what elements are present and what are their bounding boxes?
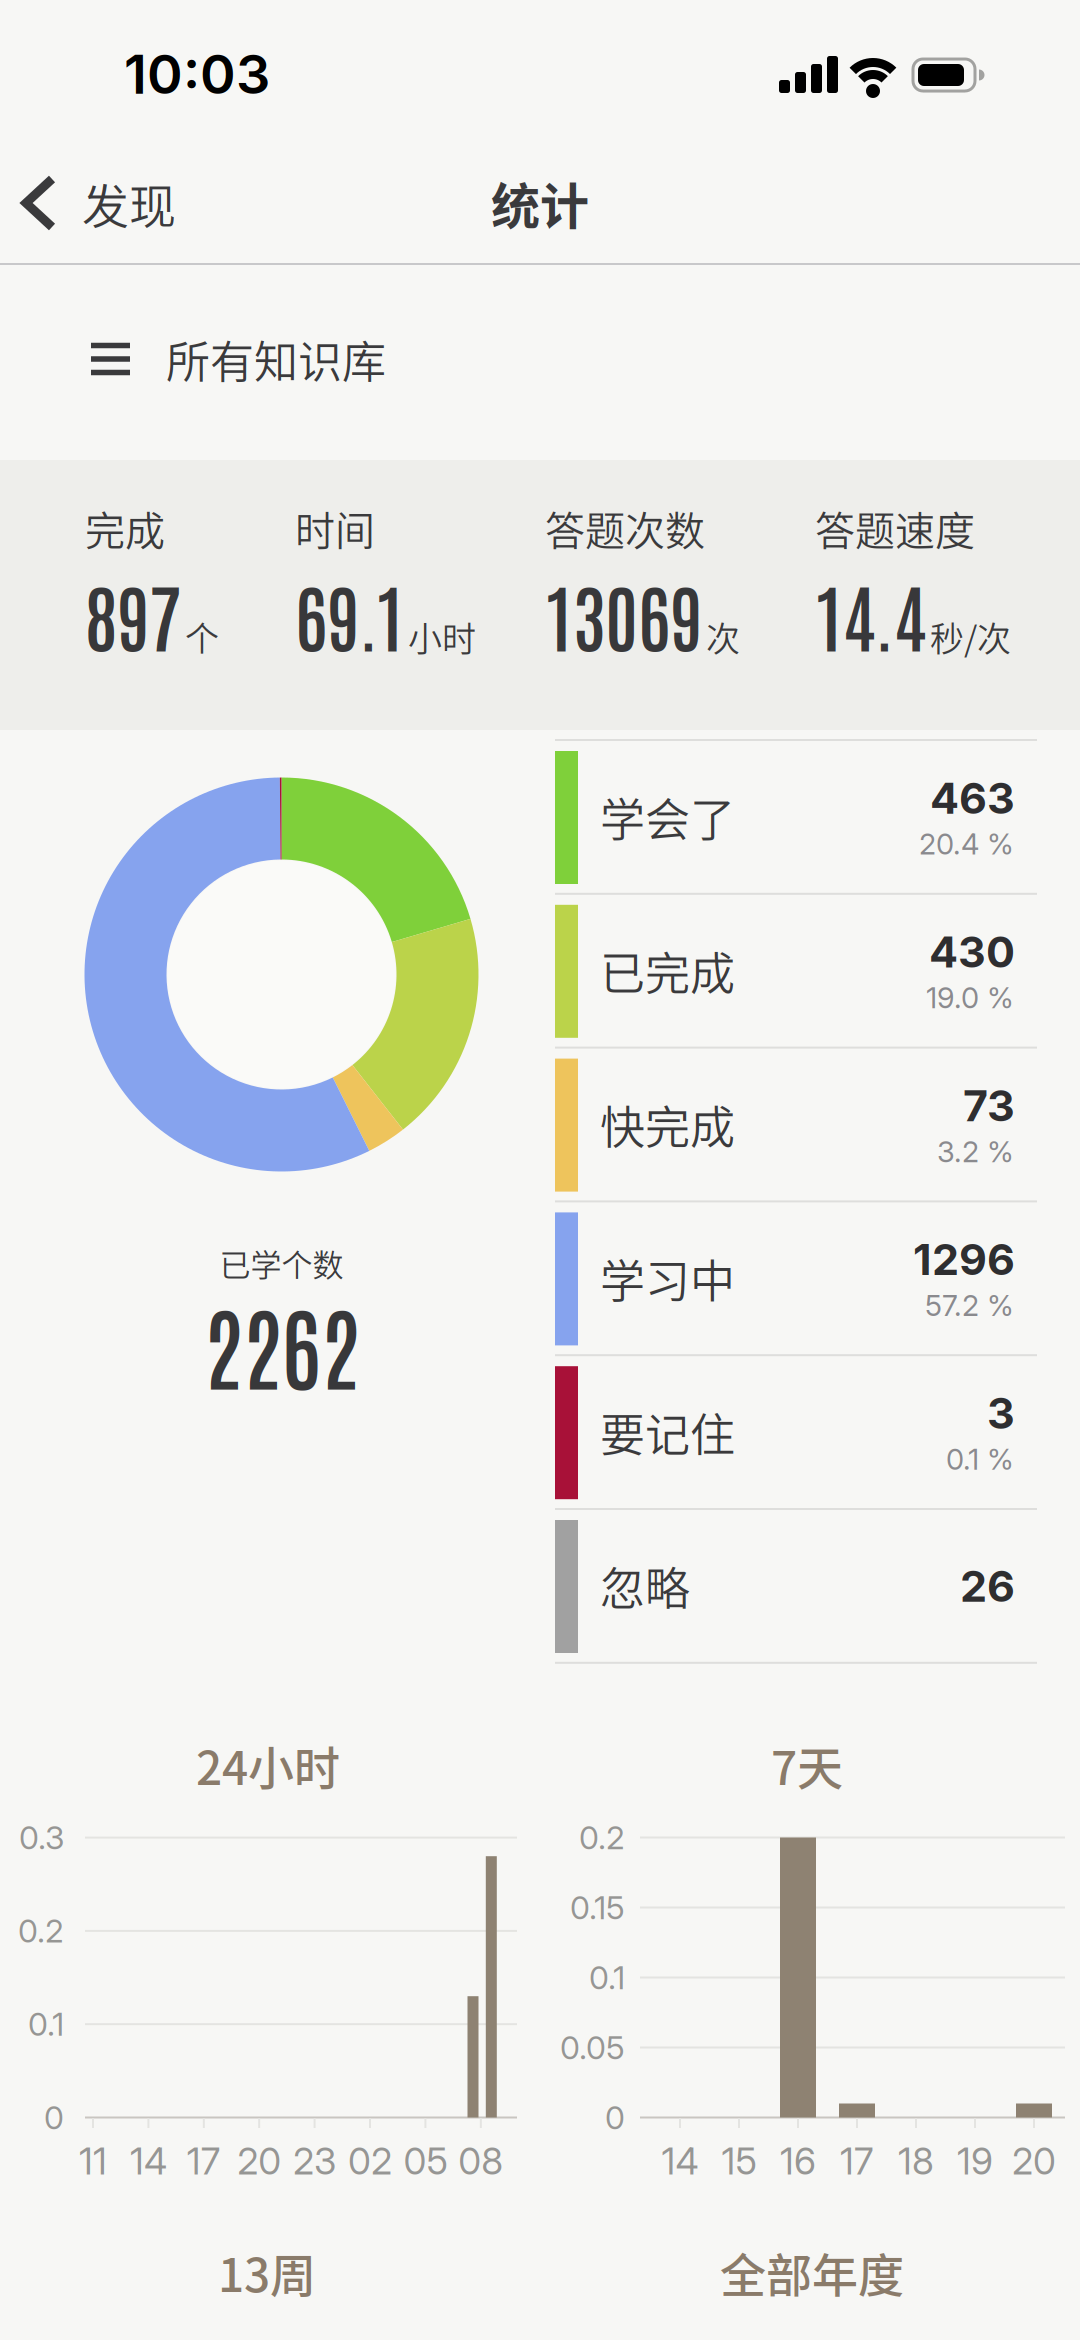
staticText: 08 [458, 2139, 503, 2183]
staticText: 14.4 [815, 566, 926, 662]
staticText: 17 [840, 2139, 874, 2183]
staticText: 15 [721, 2139, 756, 2183]
staticText: 统计 [491, 167, 589, 238]
staticText: 0.1 [28, 2005, 64, 2043]
staticText: 57.2 % [925, 1288, 1014, 1323]
staticText: 忽略 [600, 1553, 690, 1619]
staticText: 05 [403, 2139, 447, 2183]
staticText: 20.4 % [919, 826, 1014, 862]
button[interactable]: 全部年度 [662, 2232, 962, 2312]
staticText: 所有知识库 [166, 327, 386, 391]
staticText: 0 [44, 2098, 64, 2137]
staticText: 7天 [771, 1732, 843, 1798]
staticText: 全部年度 [720, 2239, 904, 2305]
staticText: 69.1 [295, 566, 404, 662]
staticText: 0.05 [560, 2028, 625, 2067]
staticText: 13周 [218, 2239, 316, 2305]
staticText: 14 [661, 2139, 698, 2183]
button[interactable]: 13周 [137, 2232, 397, 2312]
staticText: 0.2 [579, 1818, 625, 1857]
staticText: 18 [898, 2139, 934, 2183]
staticText: 0 [605, 2098, 625, 2137]
staticText: 秒/次 [930, 612, 1011, 661]
staticText: 20 [237, 2139, 281, 2183]
staticText: 时间 [295, 499, 375, 557]
staticText: 24小时 [196, 1732, 340, 1798]
staticText: 11 [79, 2139, 107, 2183]
staticText: 学会了 [600, 784, 735, 850]
staticText: 10:03 [124, 41, 270, 107]
staticText: 19.0 % [926, 980, 1014, 1015]
staticText: 小时 [408, 612, 476, 661]
staticText: 23 [293, 2139, 336, 2183]
staticText: 答题速度 [815, 499, 975, 557]
staticText: 0.1 % [946, 1442, 1014, 1477]
staticText: 13069 [545, 566, 702, 662]
staticText: 1296 [913, 1233, 1015, 1285]
staticText: 02 [348, 2139, 392, 2183]
staticText: 463 [930, 772, 1015, 824]
staticText: 0.15 [570, 1888, 625, 1927]
staticText: 已完成 [600, 938, 735, 1003]
staticText: 16 [780, 2139, 816, 2183]
staticText: 17 [187, 2139, 221, 2183]
staticText: 897 [85, 566, 181, 662]
staticText: 学习中 [600, 1246, 735, 1311]
staticText: 26 [960, 1560, 1015, 1612]
staticText: 快完成 [600, 1092, 735, 1157]
staticText: 20 [1012, 2139, 1056, 2183]
staticText: 发现 [82, 169, 176, 237]
staticText: 0.2 [18, 1911, 64, 1950]
staticText: 0.3 [19, 1818, 64, 1857]
staticText: 2262 [203, 1285, 359, 1401]
button[interactable]: 返回发现 [18, 158, 238, 248]
staticText: 430 [929, 926, 1015, 978]
staticText: 个 [185, 612, 219, 661]
staticText: 次 [706, 612, 740, 661]
staticText: 答题次数 [545, 499, 705, 557]
staticText: 已学个数 [219, 1241, 343, 1285]
staticText: 3 [987, 1387, 1015, 1439]
button[interactable]: 选择知识库 [91, 314, 511, 404]
staticText: 19 [957, 2139, 993, 2183]
staticText: 3.2 % [937, 1134, 1014, 1169]
staticText: 0.1 [589, 1958, 625, 1997]
staticText: 73 [963, 1080, 1015, 1132]
staticText: 要记住 [600, 1400, 735, 1465]
staticText: 完成 [85, 499, 165, 557]
staticText: 14 [130, 2139, 167, 2183]
